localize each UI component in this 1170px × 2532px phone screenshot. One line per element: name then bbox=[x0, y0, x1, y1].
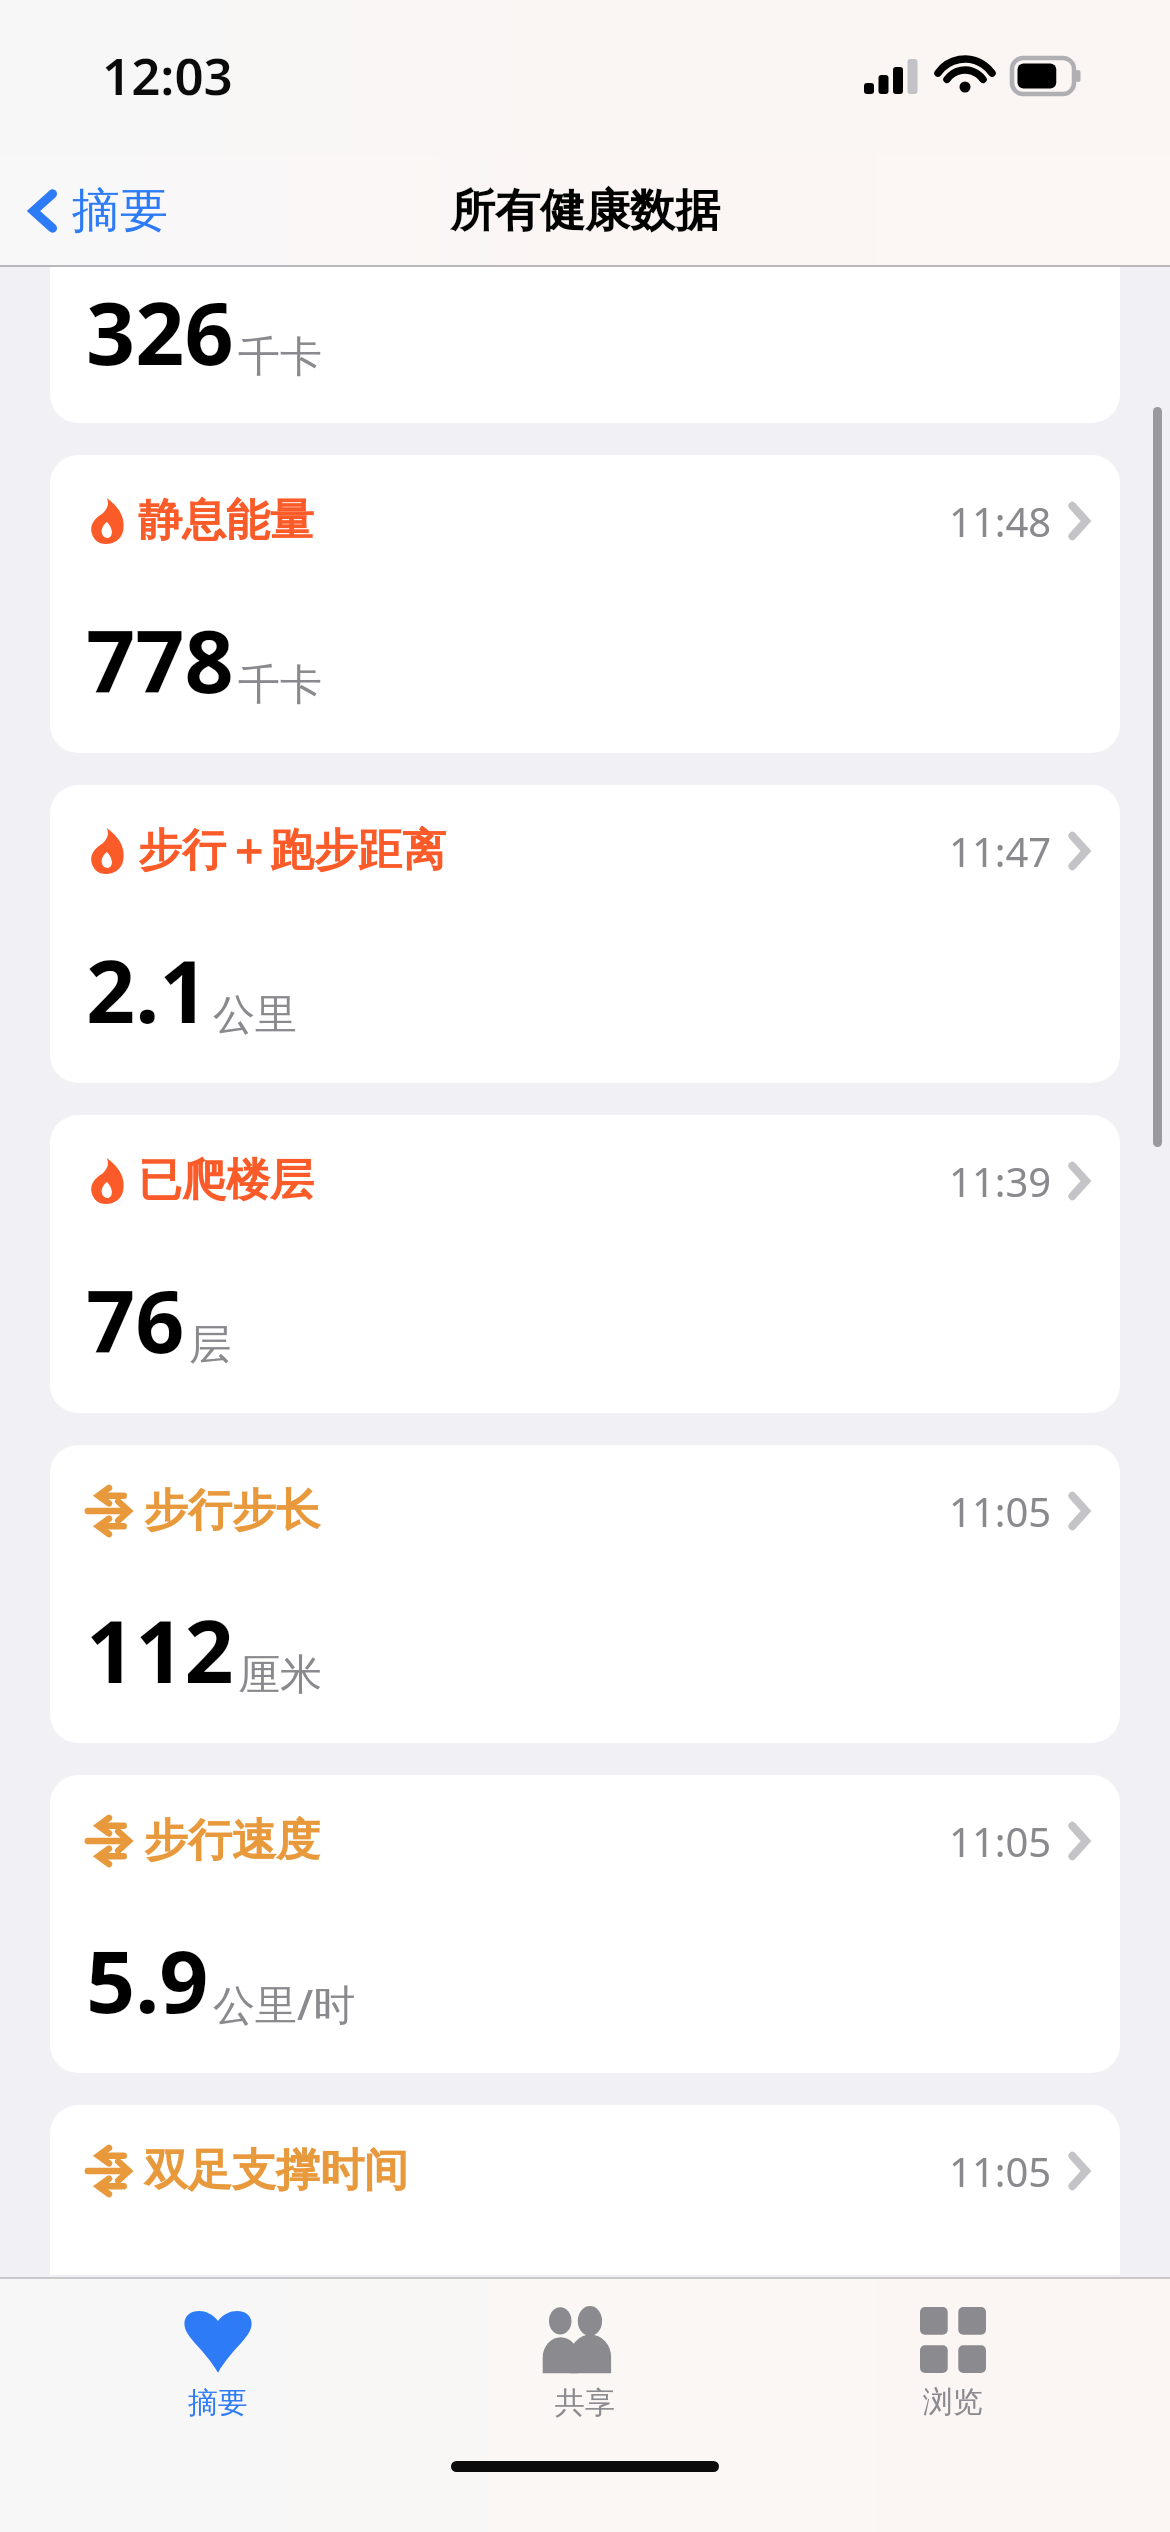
button[interactable]: 摘要 bbox=[0, 171, 184, 251]
staticText: 11:05 bbox=[949, 1484, 1052, 1538]
staticText: 所有健康数据 bbox=[450, 183, 720, 240]
staticText: 层 bbox=[189, 1319, 231, 1372]
staticText: 步行步长 bbox=[144, 1483, 320, 1538]
staticText: 摘要 bbox=[72, 181, 168, 241]
button[interactable]: 326 bbox=[50, 267, 1120, 423]
button[interactable]: 静息能量 bbox=[50, 455, 1120, 753]
staticText: 11:47 bbox=[949, 824, 1052, 878]
other: 浏览 bbox=[920, 2307, 986, 2373]
button[interactable]: 步行速度 bbox=[50, 1775, 1120, 2073]
staticText: 2.1 bbox=[86, 931, 209, 1048]
staticText: 双足支撑时间 bbox=[144, 2143, 408, 2198]
button[interactable]: 步行＋跑步距离 bbox=[50, 785, 1120, 1083]
staticText: 摘要 bbox=[188, 2384, 248, 2422]
staticText: 12:03 bbox=[102, 40, 233, 109]
other: 共享 bbox=[540, 2306, 630, 2374]
staticText: 步行＋跑步距离 bbox=[138, 823, 446, 878]
staticText: 步行速度 bbox=[144, 1813, 320, 1868]
staticText: 778 bbox=[86, 601, 234, 718]
staticText: 厘米 bbox=[238, 1649, 322, 1702]
staticText: 千卡 bbox=[238, 659, 322, 712]
staticText: 11:05 bbox=[949, 1814, 1052, 1868]
staticText: 公里/时 bbox=[213, 1975, 356, 2032]
staticText: 5.9 bbox=[86, 1921, 209, 2038]
staticText: 11:48 bbox=[949, 494, 1052, 548]
staticText: 76 bbox=[86, 1261, 185, 1378]
staticText: 共享 bbox=[555, 2384, 615, 2422]
staticText: 326 bbox=[86, 273, 234, 390]
staticText: 已爬楼层 bbox=[138, 1153, 314, 1208]
button[interactable]: 双足支撑时间 bbox=[50, 2105, 1120, 2275]
other: 摘要 bbox=[183, 2306, 253, 2374]
staticText: 浏览 bbox=[923, 2383, 983, 2421]
button[interactable]: 浏览 bbox=[803, 2299, 1103, 2429]
staticText: 千卡 bbox=[238, 331, 322, 384]
staticText: 11:39 bbox=[949, 1154, 1052, 1208]
staticText: 静息能量 bbox=[138, 493, 314, 548]
staticText: 11:05 bbox=[949, 2144, 1052, 2198]
button[interactable]: 已爬楼层 bbox=[50, 1115, 1120, 1413]
button[interactable]: 共享 bbox=[435, 2298, 735, 2430]
staticText: 112 bbox=[86, 1591, 234, 1708]
button[interactable]: 摘要 bbox=[68, 2298, 368, 2430]
button[interactable]: 步行步长 bbox=[50, 1445, 1120, 1743]
staticText: 公里 bbox=[213, 989, 297, 1042]
